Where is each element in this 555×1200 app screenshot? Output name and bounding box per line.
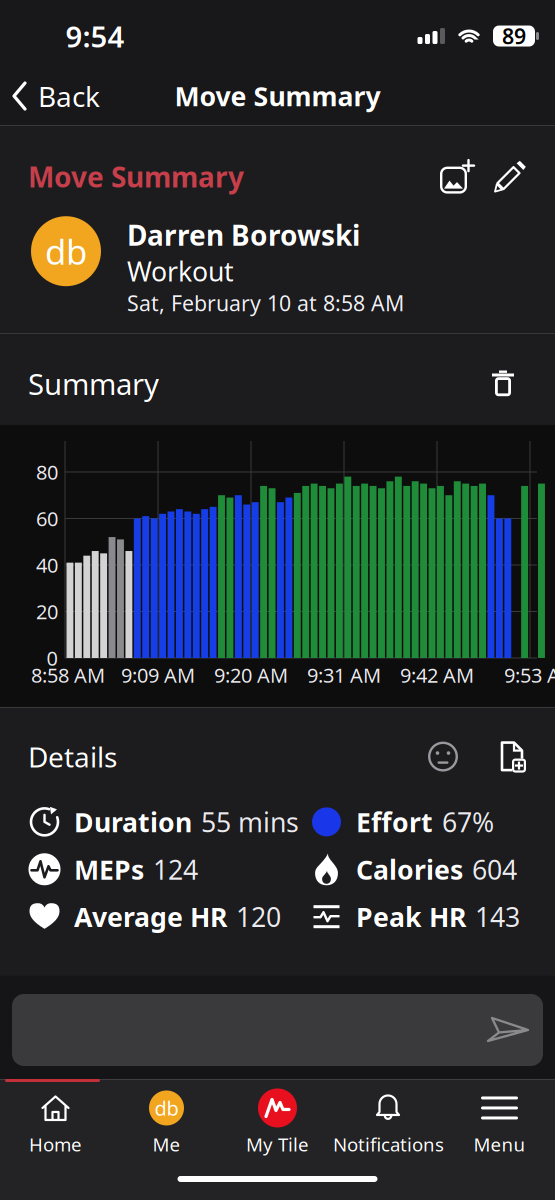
button[interactable]: Add note (497, 741, 527, 773)
staticText: Darren Borowski (127, 216, 360, 253)
staticText: 89 (502, 22, 526, 50)
staticText: Back (38, 77, 100, 115)
staticText: Move Summary (28, 158, 244, 195)
staticText: Sat, February 10 at 8:58 AM (127, 289, 404, 317)
button[interactable]: Add photo (437, 160, 477, 194)
staticText: Duration (74, 804, 192, 840)
staticText: 20 (36, 598, 58, 625)
staticText: 40 (36, 552, 58, 578)
staticText: 8:58 AM (31, 662, 105, 688)
staticText: 9:42 AM (400, 662, 474, 688)
staticText: 67% (442, 804, 494, 840)
staticText: 80 (36, 459, 58, 485)
button[interactable]: Back (0, 71, 100, 115)
staticText: 124 (153, 852, 198, 887)
staticText: Home (29, 1132, 82, 1157)
button[interactable]: Menu (444, 1090, 555, 1157)
staticText: 143 (475, 899, 520, 934)
staticText: Details (28, 738, 117, 775)
staticText: 9:53 A (504, 662, 555, 688)
staticText: db (154, 1095, 178, 1121)
staticText: 60 (36, 505, 58, 532)
button[interactable]: Reaction (427, 741, 459, 773)
staticText: Peak HR (356, 899, 466, 934)
staticText: Move Summary (174, 78, 380, 114)
staticText: 120 (236, 899, 281, 934)
staticText: 9:09 AM (121, 662, 195, 688)
staticText: Workout (127, 253, 234, 289)
staticText: Me (152, 1132, 180, 1157)
staticText: Menu (473, 1132, 525, 1157)
staticText: Average HR (74, 899, 227, 934)
button[interactable]: db (111, 1090, 222, 1157)
staticText: 604 (472, 852, 517, 887)
staticText: 9:20 AM (214, 662, 288, 688)
staticText: My Tile (246, 1132, 309, 1157)
staticText: MEPs (74, 852, 144, 887)
staticText: Summary (28, 364, 159, 403)
button[interactable]: Home (0, 1090, 111, 1157)
button[interactable]: My Tile (222, 1090, 333, 1157)
staticText: 9:31 AM (307, 662, 381, 688)
button[interactable]: Delete (491, 369, 515, 397)
staticText: Calories (356, 852, 463, 887)
staticText: Effort (356, 804, 433, 840)
staticText: db (45, 228, 87, 274)
staticText: 0 (46, 645, 57, 671)
staticText: 9:54 (65, 16, 124, 55)
staticText: 55 mins (201, 804, 299, 840)
button[interactable]: Add comment (12, 994, 543, 1066)
staticText: Notifications (333, 1132, 444, 1157)
button[interactable]: Edit (493, 160, 527, 194)
button[interactable]: Notifications (333, 1090, 444, 1157)
